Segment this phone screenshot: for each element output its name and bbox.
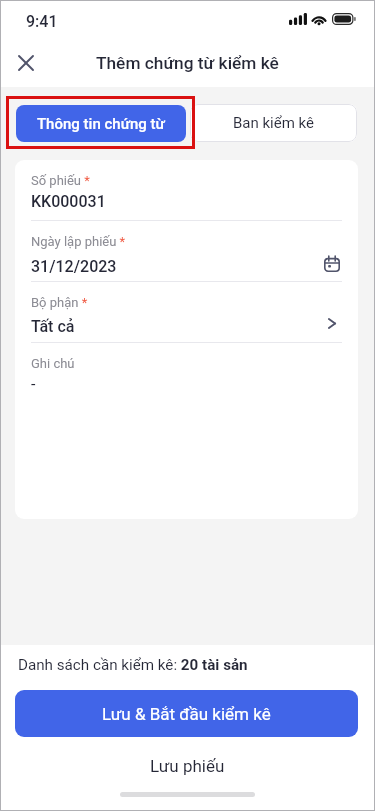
staticText: Lưu phiếu — [150, 756, 225, 776]
staticText: Ghi chú — [31, 356, 75, 371]
staticText: Lưu & Bắt đầu kiểm kê — [102, 704, 271, 724]
staticText: 31/12/2023 — [31, 257, 316, 276]
staticText: Thông tin chứng từ — [37, 115, 165, 133]
button[interactable]: Close — [7, 44, 45, 82]
staticText: Tất cả — [31, 317, 318, 336]
staticText: Ngày lập phiếu * — [31, 234, 126, 249]
staticText: KK000031 — [31, 192, 342, 211]
button[interactable]: Choose date — [319, 251, 345, 277]
button[interactable]: Bộ phận * — [15, 282, 358, 343]
staticText: 9:41 — [26, 12, 58, 31]
staticText: Số phiếu * — [31, 173, 90, 188]
button[interactable]: Lưu phiếu — [0, 744, 375, 788]
button[interactable]: Lưu & Bắt đầu kiểm kê — [15, 690, 358, 737]
button[interactable]: Thông tin chứng từ — [16, 105, 186, 142]
staticText: - — [31, 375, 342, 394]
staticText: Bộ phận * — [31, 295, 88, 310]
staticText: Ban kiểm kê — [233, 114, 314, 132]
button[interactable]: Ban kiểm kê — [190, 104, 357, 142]
staticText: Thêm chứng từ kiểm kê — [96, 53, 279, 73]
staticText: Danh sách cần kiểm kê: 20 tài sản — [18, 656, 248, 674]
